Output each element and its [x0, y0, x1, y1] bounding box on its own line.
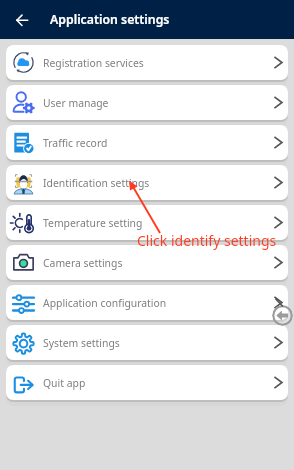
staticText: Registration services [43, 56, 144, 70]
staticText: Traffic record [43, 136, 108, 150]
staticText: Camera settings [43, 256, 123, 270]
staticText: Application settings [50, 11, 170, 28]
button[interactable]: Back [10, 8, 34, 32]
staticText: System settings [43, 336, 120, 350]
staticText: Temperature setting [43, 216, 143, 230]
button[interactable]: Quit app [6, 365, 288, 400]
button[interactable]: Registration services [6, 45, 288, 80]
staticText: Quit app [43, 376, 86, 390]
button[interactable]: User manage [6, 85, 288, 120]
staticText: Application configuration [43, 296, 167, 310]
button[interactable]: Identification settings [6, 165, 288, 200]
button[interactable]: Temperature setting [6, 205, 288, 240]
staticText: Identification settings [43, 176, 150, 190]
button[interactable]: Camera settings [6, 245, 288, 280]
button[interactable]: Application configuration [6, 285, 288, 320]
button[interactable]: System settings [6, 325, 288, 360]
button[interactable]: Back [272, 305, 293, 326]
staticText: Click identify settings [137, 231, 277, 250]
staticText: User manage [43, 96, 109, 110]
button[interactable]: Traffic record [6, 125, 288, 160]
